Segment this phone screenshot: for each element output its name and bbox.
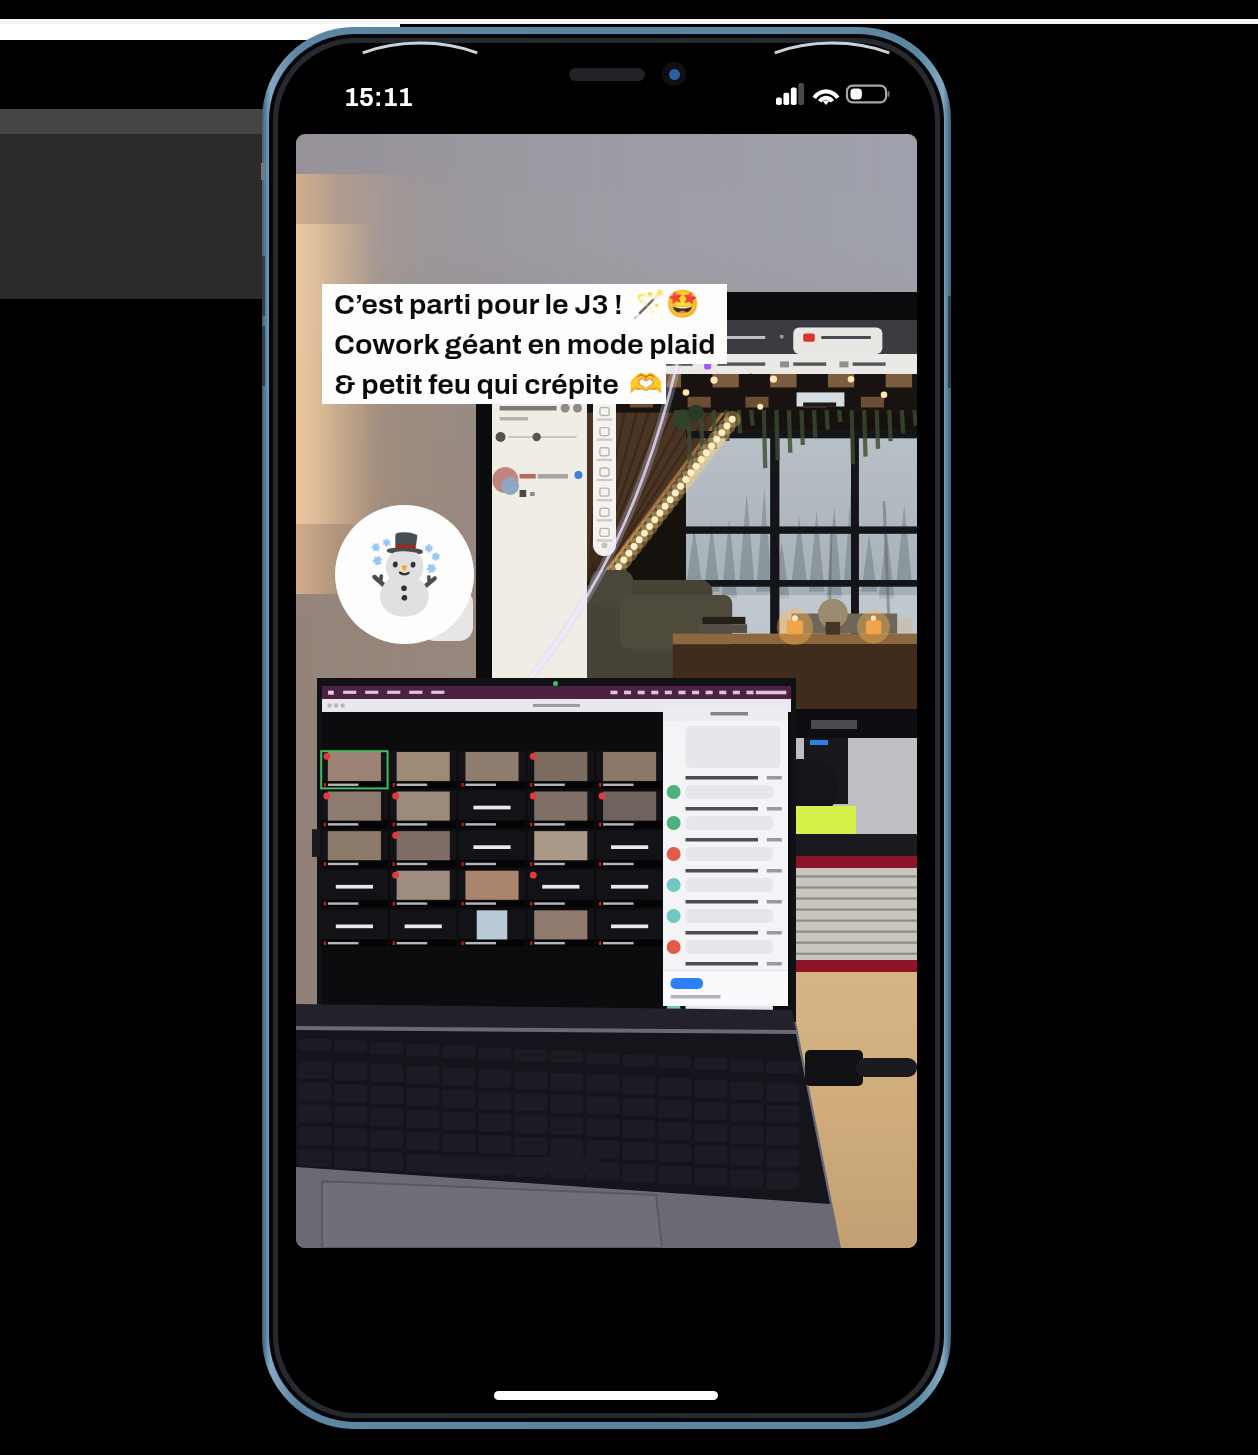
button[interactable]: Cowork géant en mode plaid [322, 324, 727, 364]
other: Wi-Fi connected [812, 82, 840, 105]
button[interactable]: Home indicator [494, 1391, 718, 1400]
staticText: 🪄🤩 [632, 288, 700, 320]
staticText: ☃️ [357, 530, 452, 619]
staticText: 🫶 [629, 368, 663, 400]
staticText: Cowork géant en mode plaid [334, 329, 716, 360]
other: Battery level [847, 83, 889, 105]
button[interactable]: C’est parti pour le J3 ! [322, 284, 727, 324]
other: Cellular signal strength [776, 83, 805, 105]
staticText: C’est parti pour le J3 ! [334, 289, 623, 320]
button[interactable]: Snowman reaction [335, 505, 474, 644]
staticText: & petit feu qui crépite [334, 369, 620, 400]
staticText: 15:11 [344, 83, 413, 111]
button[interactable]: & petit feu qui crépite [322, 364, 666, 404]
